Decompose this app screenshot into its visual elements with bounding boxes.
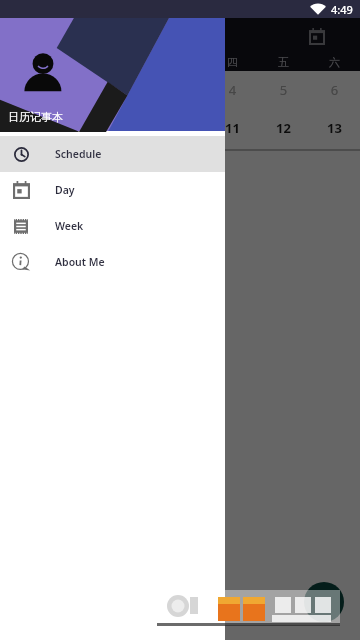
button[interactable]: Day — [0, 172, 225, 208]
staticText: Day — [55, 183, 75, 197]
button[interactable]: About Me — [0, 244, 225, 280]
button[interactable]: Add event — [304, 582, 344, 622]
staticText: 10 — [156, 119, 207, 137]
button[interactable]: Schedule — [0, 136, 225, 172]
staticText: 4 — [207, 81, 258, 99]
staticText: 7 — [0, 119, 52, 137]
staticText: 12 — [258, 119, 309, 137]
staticText: Week — [55, 219, 84, 233]
staticText: 二 — [104, 55, 156, 69]
staticText: 4:49 — [331, 2, 353, 17]
staticText: 8 — [52, 119, 104, 137]
staticText: 一 — [52, 55, 104, 69]
staticText — [0, 81, 52, 99]
button[interactable]: Week — [0, 208, 225, 244]
staticText: 六 — [309, 55, 360, 69]
staticText: 2 — [104, 81, 156, 99]
button[interactable]: Today — [305, 24, 329, 48]
staticText: 五 — [258, 55, 309, 69]
staticText: About Me — [55, 255, 105, 269]
staticText: 四 — [207, 55, 258, 69]
staticText: 1 — [52, 81, 104, 99]
staticText: 5 — [258, 81, 309, 99]
staticText: 13 — [309, 119, 360, 137]
staticText: 日 — [0, 55, 52, 69]
staticText: 6 — [309, 81, 360, 99]
staticText: Schedule — [55, 147, 102, 161]
staticText: 11 — [207, 119, 258, 137]
staticText: 9 — [104, 119, 156, 137]
staticText: 日历记事本 — [8, 110, 63, 124]
